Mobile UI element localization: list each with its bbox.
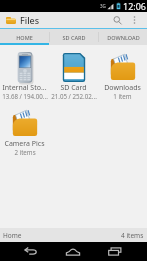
staticText: SD Card	[60, 83, 87, 92]
button[interactable]: Camera Pics	[0, 101, 49, 157]
staticText: 3G	[100, 3, 106, 9]
staticText: Home	[3, 231, 22, 240]
staticText: SD CARD	[62, 34, 86, 41]
button[interactable]: Search	[107, 12, 127, 28]
staticText: 2 items	[14, 148, 36, 156]
staticText: 21.05 / 252.02...	[51, 92, 97, 100]
staticText: Downloads	[104, 83, 141, 92]
button[interactable]: Downloads	[98, 45, 147, 101]
staticText: Camera Pics	[4, 139, 45, 148]
staticText: Internal Sto...	[2, 83, 47, 92]
button[interactable]: More options	[127, 12, 141, 28]
staticText: 13.68 / 194.00...	[2, 92, 48, 100]
staticText: 12:06	[123, 0, 147, 12]
button[interactable]: HOME	[0, 29, 49, 45]
button[interactable]: Home	[51, 242, 94, 261]
button[interactable]: Back	[10, 242, 51, 261]
button[interactable]: DOWNLOAD	[99, 29, 147, 45]
staticText: DOWNLOAD	[107, 34, 140, 41]
button[interactable]: Internal Sto...	[0, 45, 49, 101]
staticText: 4 items	[121, 231, 144, 240]
staticText: 1 item	[113, 92, 132, 100]
button[interactable]: Recents	[94, 242, 135, 261]
staticText: Files	[20, 14, 40, 26]
button[interactable]: SD Card	[49, 45, 98, 101]
button[interactable]: SD CARD	[50, 29, 98, 45]
staticText: HOME	[16, 34, 33, 41]
